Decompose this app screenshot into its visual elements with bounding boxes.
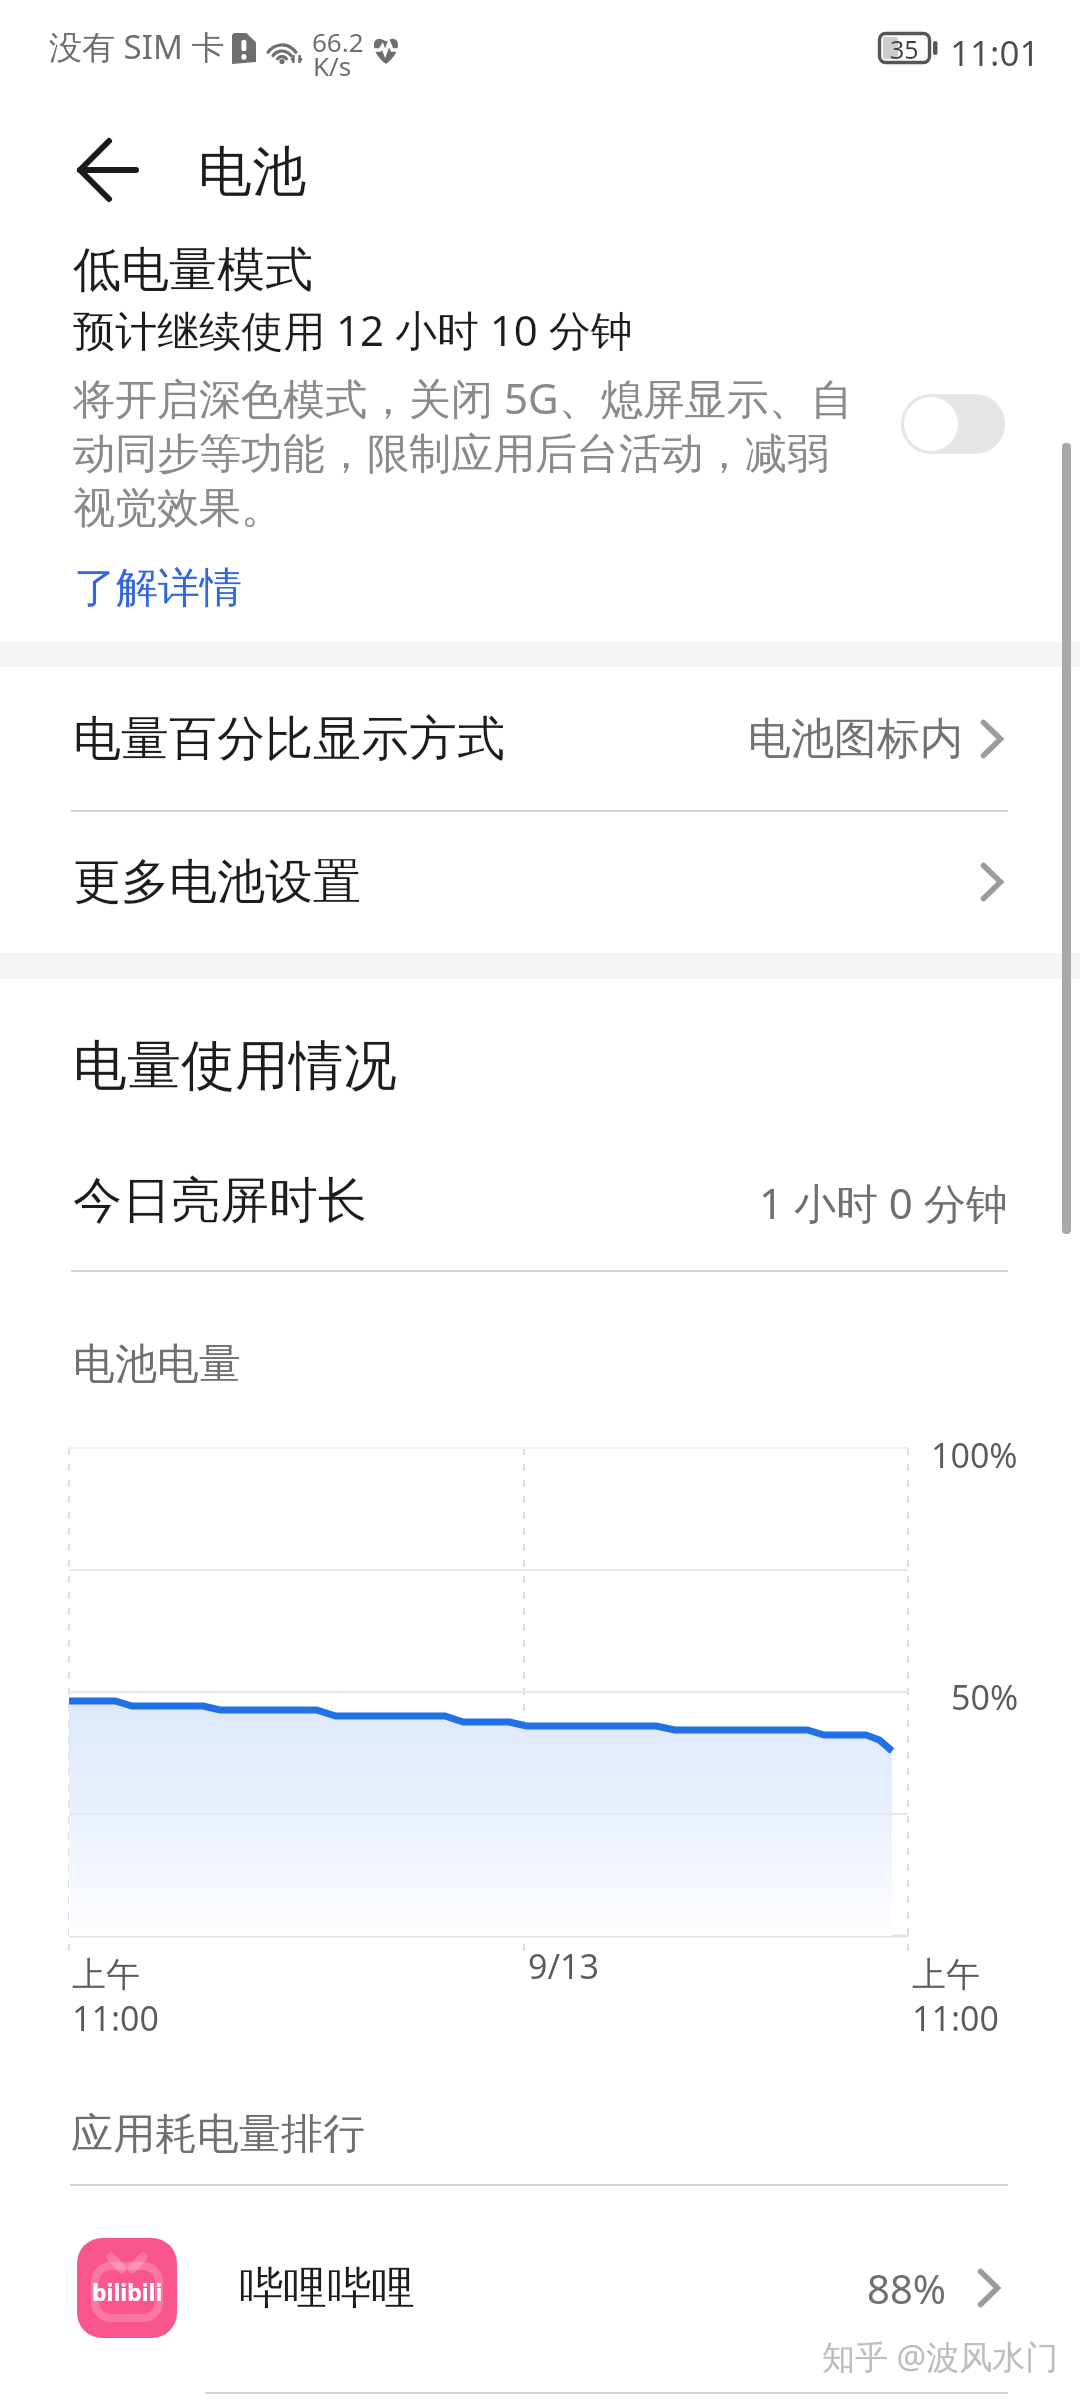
staticText: 更多电池设置 (73, 852, 361, 912)
button[interactable]: Back (63, 111, 153, 201)
staticText: 没有 SIM 卡 (49, 24, 225, 69)
staticText: 66.2 (312, 24, 364, 59)
staticText: 将开启深色模式，关闭 5G、熄屏显示、自 动同步等功能，限制应用后台活动，减弱 … (73, 369, 853, 535)
staticText: 电量使用情况 (73, 1032, 397, 1100)
staticText: 1 小时 0 分钟 (759, 1174, 1008, 1231)
staticText: 低电量模式 (73, 240, 313, 300)
staticText: 9/13 (528, 1943, 599, 1989)
staticText: 88% (867, 2261, 946, 2315)
staticText: bilibili (92, 2276, 163, 2307)
staticText: 50% (951, 1674, 1019, 1720)
staticText: 35 (890, 32, 919, 64)
staticText: 电池电量 (73, 1338, 241, 1391)
staticText: 哔哩哔哩 (239, 2261, 415, 2316)
staticText: 11:01 (950, 29, 1040, 77)
button[interactable]: Low power mode toggle (901, 394, 1005, 454)
staticText: 电池 (198, 138, 306, 206)
button[interactable]: 电量百分比显示方式 (0, 667, 1080, 810)
staticText: 电池图标内 (748, 712, 963, 766)
button[interactable]: 今日亮屏时长 (73, 1170, 1008, 1232)
staticText: 100% (931, 1432, 1018, 1478)
staticText: 应用耗电量排行 (71, 2108, 365, 2161)
staticText: 电量百分比显示方式 (73, 709, 505, 769)
staticText: 知乎 @波风水门 (822, 2334, 1059, 2379)
button[interactable]: bilibili (0, 2208, 1080, 2368)
staticText: 今日亮屏时长 (73, 1170, 367, 1232)
staticText: K/s (313, 48, 352, 83)
staticText: 预计继续使用 12 小时 10 分钟 (73, 301, 633, 358)
button[interactable]: 了解详情 (74, 562, 242, 615)
button[interactable]: 更多电池设置 (0, 810, 1080, 953)
staticText: 上午 11:00 (912, 1953, 999, 2041)
staticText: 上午 11:00 (72, 1953, 159, 2041)
